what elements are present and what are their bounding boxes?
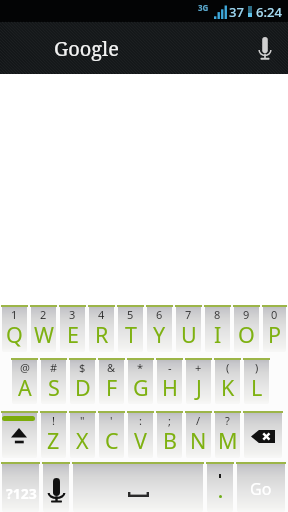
staticText: ?123 xyxy=(6,484,37,503)
staticText: S xyxy=(48,373,60,402)
button[interactable] xyxy=(205,462,235,512)
button[interactable]: Shift xyxy=(0,411,39,458)
staticText: F xyxy=(106,373,118,402)
button[interactable]: 9 xyxy=(232,305,261,352)
staticText: B xyxy=(163,426,177,455)
button[interactable]: ) xyxy=(242,358,271,404)
staticText: D xyxy=(75,373,91,402)
staticText: R xyxy=(95,320,109,349)
button[interactable]: 8 xyxy=(203,305,232,352)
staticText: O xyxy=(238,320,255,349)
staticText: E xyxy=(67,320,79,349)
other: Space xyxy=(71,462,205,512)
button[interactable]: / xyxy=(184,411,213,458)
staticText: # xyxy=(50,360,58,375)
button[interactable]: 1 xyxy=(0,305,29,352)
staticText: + xyxy=(195,360,202,375)
staticText: Q xyxy=(6,320,23,349)
button[interactable]: ( xyxy=(213,358,242,404)
staticText: Google xyxy=(54,35,120,62)
button[interactable]: Space xyxy=(71,462,205,512)
staticText: / xyxy=(196,413,201,428)
button[interactable]: Go xyxy=(235,462,287,512)
staticText: W xyxy=(34,320,54,349)
staticText: V xyxy=(134,426,147,455)
staticText: T xyxy=(125,320,137,349)
staticText: G xyxy=(133,373,149,402)
staticText: 5 xyxy=(127,307,134,322)
staticText: & xyxy=(107,360,116,375)
staticText: Y xyxy=(153,320,166,349)
staticText: N xyxy=(190,426,207,455)
staticText: ) xyxy=(255,360,259,375)
staticText: 6 xyxy=(156,307,163,322)
button[interactable]: & xyxy=(97,358,126,404)
staticText: $ xyxy=(79,360,86,375)
button[interactable]: 2 xyxy=(29,305,58,352)
button[interactable]: : xyxy=(126,411,155,458)
staticText: ; xyxy=(168,413,171,428)
button[interactable]: ! xyxy=(39,411,68,458)
button[interactable]: ?123 xyxy=(0,462,41,512)
staticText: 0 xyxy=(271,307,278,322)
staticText: - xyxy=(168,360,172,375)
button[interactable]: - xyxy=(155,358,184,404)
staticText: ' xyxy=(110,413,113,428)
button[interactable]: Voice search xyxy=(249,32,281,64)
staticText: P xyxy=(268,320,282,349)
staticText: 3G xyxy=(198,2,209,13)
button[interactable]: ' xyxy=(97,411,126,458)
staticText: 37 xyxy=(229,3,244,21)
staticText: 2 xyxy=(40,307,47,322)
staticText: J xyxy=(196,373,202,402)
button[interactable]: # xyxy=(39,358,68,404)
staticText: A xyxy=(18,373,32,402)
staticText: Go xyxy=(250,478,272,500)
button[interactable]: Backspace xyxy=(242,411,284,458)
button[interactable]: Google xyxy=(0,22,288,74)
staticText: " xyxy=(80,413,85,428)
button[interactable]: + xyxy=(184,358,213,404)
staticText: 3 xyxy=(69,307,76,322)
staticText: 1 xyxy=(11,307,18,322)
button[interactable]: 7 xyxy=(174,305,203,352)
staticText: I xyxy=(214,320,222,349)
button[interactable]: 4 xyxy=(87,305,116,352)
button[interactable]: 5 xyxy=(116,305,145,352)
staticText: L xyxy=(251,373,263,402)
staticText: ! xyxy=(52,413,55,428)
staticText: * xyxy=(137,360,144,375)
staticText: 8 xyxy=(214,307,221,322)
staticText: 9 xyxy=(243,307,250,322)
button[interactable]: ; xyxy=(155,411,184,458)
button[interactable]: 6 xyxy=(145,305,174,352)
button[interactable]: ? xyxy=(213,411,242,458)
staticText: : xyxy=(139,413,142,428)
staticText: K xyxy=(221,373,235,402)
button[interactable]: 3 xyxy=(58,305,87,352)
button[interactable]: * xyxy=(126,358,155,404)
staticText: H xyxy=(162,373,178,402)
button[interactable]: 0 xyxy=(261,305,288,352)
button[interactable]: Voice input xyxy=(41,462,71,512)
staticText: U xyxy=(181,320,197,349)
staticText: M xyxy=(218,426,238,455)
staticText: Z xyxy=(47,426,60,455)
staticText: 7 xyxy=(185,307,192,322)
button[interactable]: " xyxy=(68,411,97,458)
other: Voice input xyxy=(41,462,71,512)
staticText: ? xyxy=(225,413,230,428)
staticText: @ xyxy=(20,360,30,375)
button[interactable]: $ xyxy=(68,358,97,404)
staticText: ( xyxy=(226,360,230,375)
button[interactable]: @ xyxy=(10,358,39,404)
other: Shift xyxy=(0,411,39,458)
staticText: C xyxy=(105,426,119,455)
staticText: 4 xyxy=(98,307,105,322)
other: Backspace xyxy=(242,411,284,458)
staticText: X xyxy=(76,426,89,455)
staticText: 6:24 xyxy=(256,3,282,21)
